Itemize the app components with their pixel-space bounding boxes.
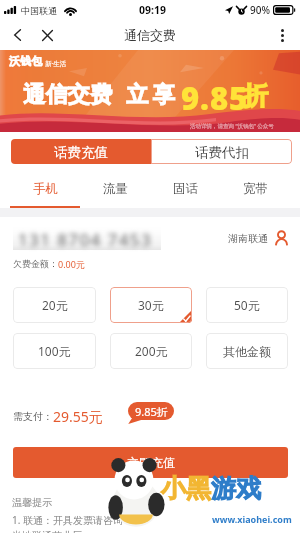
staticText: 50元 (234, 297, 260, 313)
staticText: 话费充值 (54, 144, 108, 161)
staticText: 100元 (38, 343, 71, 359)
staticText: 湖南联通 (228, 232, 268, 245)
staticText: 90% (250, 3, 270, 17)
button[interactable]: More options (269, 22, 295, 48)
staticText: 立享 (124, 81, 177, 109)
staticText: 宽带 (243, 181, 268, 197)
staticText: 固话 (173, 181, 198, 197)
button[interactable]: 话费充值 (11, 139, 151, 164)
staticText: 0.00元 (58, 258, 85, 270)
button[interactable]: 沃钱包 (0, 50, 300, 132)
staticText: 30元 (138, 297, 164, 313)
staticText: 欠费金额： (13, 258, 58, 269)
staticText: 131 8704 7453 (18, 228, 153, 251)
button[interactable]: 30元 (110, 287, 192, 323)
staticText: 温馨提示 (12, 496, 52, 509)
staticText: 当地联通营业厅 (12, 529, 82, 533)
button[interactable]: 手机 (10, 166, 80, 208)
button[interactable]: 立即充值 (13, 447, 288, 478)
staticText: 手机 (33, 181, 58, 197)
button[interactable]: Close (34, 22, 60, 48)
staticText: 流量 (103, 181, 128, 197)
button[interactable]: 固话 (150, 166, 220, 208)
button[interactable]: 宽带 (220, 166, 290, 208)
button[interactable]: Back (4, 22, 30, 48)
staticText: 折 (242, 80, 268, 113)
button[interactable]: 131 8704 7453 (13, 226, 161, 250)
button[interactable]: 50元 (206, 287, 288, 323)
staticText: 29.55元 (53, 407, 103, 426)
button[interactable]: 20元 (13, 287, 96, 323)
staticText: 9.85折 (135, 404, 168, 419)
staticText: www.xiaohei.com (212, 513, 292, 525)
staticText: 话费代扣 (195, 144, 249, 161)
staticText: 9.85 (181, 77, 249, 119)
staticText: 通信交费 (23, 81, 113, 109)
button[interactable]: 200元 (110, 333, 192, 369)
staticText: 20元 (42, 297, 68, 313)
button[interactable]: Select contact (272, 229, 290, 247)
staticText: 沃钱包 (9, 54, 42, 68)
staticText: 新·生活 (45, 59, 67, 68)
staticText: 中国联通 (21, 5, 57, 16)
staticText: 09:19 (139, 3, 166, 17)
button[interactable]: 流量 (80, 166, 150, 208)
button[interactable]: 其他金额 (206, 333, 288, 369)
staticText: 立即充值 (127, 455, 175, 470)
button[interactable]: 100元 (13, 333, 96, 369)
staticText: 通信交费 (124, 27, 176, 43)
staticText: 其他金额 (223, 344, 271, 359)
staticText: 需支付： (13, 410, 53, 423)
button[interactable]: 话费代扣 (151, 139, 292, 164)
staticText: 小黑 (161, 473, 211, 504)
staticText: 200元 (135, 343, 168, 359)
staticText: 1. 联通：开具发票请咨询 (12, 513, 123, 527)
staticText: 游戏 (211, 473, 261, 504)
staticText: 活动详情，请查询 “沃钱包” 公众号 (190, 122, 274, 130)
